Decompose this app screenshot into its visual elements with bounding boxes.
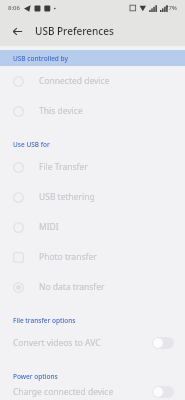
staticText: USB Preferences bbox=[35, 24, 114, 38]
staticText: 77% bbox=[165, 4, 177, 12]
button[interactable]: No data transfer bbox=[0, 272, 185, 302]
button[interactable]: MIDI bbox=[0, 212, 185, 242]
button[interactable]: Back bbox=[7, 21, 27, 41]
staticText: Use USB for bbox=[13, 140, 50, 149]
button[interactable]: USB tethering bbox=[0, 182, 185, 212]
button[interactable]: Charge connected device bbox=[0, 384, 185, 400]
staticText: Photo transfer bbox=[39, 251, 97, 263]
staticText: Power options bbox=[13, 372, 58, 381]
staticText: MIDI bbox=[39, 221, 59, 233]
button[interactable]: Photo transfer bbox=[0, 242, 185, 272]
staticText: File transfer options bbox=[13, 316, 76, 325]
button[interactable]: Connected device bbox=[0, 66, 185, 96]
staticText: Charge connected device bbox=[13, 386, 152, 398]
button[interactable]: File Transfer bbox=[0, 152, 185, 182]
button[interactable]: This device bbox=[0, 96, 185, 126]
staticText: No data transfer bbox=[39, 281, 105, 293]
staticText: USB controlled by bbox=[13, 54, 68, 63]
staticText: 8:06 bbox=[8, 4, 20, 12]
staticText: Convert videos to AVC bbox=[13, 337, 152, 349]
staticText: This device bbox=[39, 105, 83, 117]
staticText: Connected device bbox=[39, 75, 110, 87]
staticText: USB tethering bbox=[39, 191, 95, 203]
button[interactable]: Convert videos to AVC bbox=[0, 328, 185, 358]
staticText: File Transfer bbox=[39, 161, 88, 173]
